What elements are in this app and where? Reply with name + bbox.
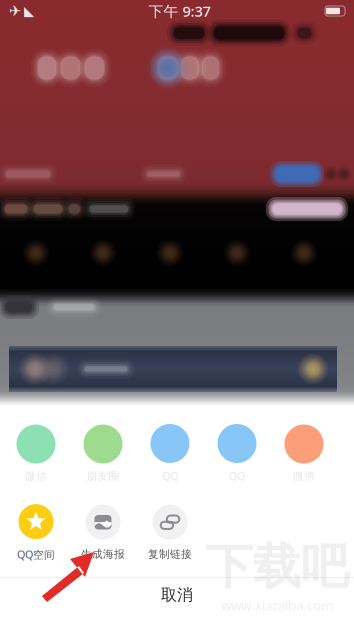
- staticText: ✈: [9, 3, 21, 19]
- staticText: QQ空间: [17, 547, 55, 561]
- staticText: 下午 9:37: [148, 1, 210, 21]
- staticText: 取消: [161, 585, 193, 605]
- staticText: 微博: [293, 469, 315, 483]
- staticText: QQ: [162, 469, 178, 483]
- button[interactable]: 复制链接: [136, 505, 203, 561]
- staticText: QQ: [229, 469, 245, 483]
- button[interactable]: 微博: [270, 424, 337, 483]
- staticText: ◣: [24, 3, 34, 18]
- button[interactable]: QQ: [136, 424, 203, 483]
- button[interactable]: QQ: [203, 424, 270, 483]
- staticText: 生成海报: [81, 548, 125, 561]
- button[interactable]: 取消: [0, 578, 354, 612]
- button[interactable]: 微信: [2, 424, 69, 483]
- staticText: 朋友圈: [86, 469, 119, 483]
- staticText: 复制链接: [148, 548, 192, 561]
- button[interactable]: 朋友圈: [69, 424, 136, 483]
- staticText: 下载吧: [205, 537, 349, 596]
- button[interactable]: 生成海报: [69, 505, 136, 561]
- staticText: www.xiazaiba.com: [221, 596, 333, 614]
- staticText: 微信: [25, 469, 47, 483]
- button[interactable]: QQ空间: [2, 504, 69, 561]
